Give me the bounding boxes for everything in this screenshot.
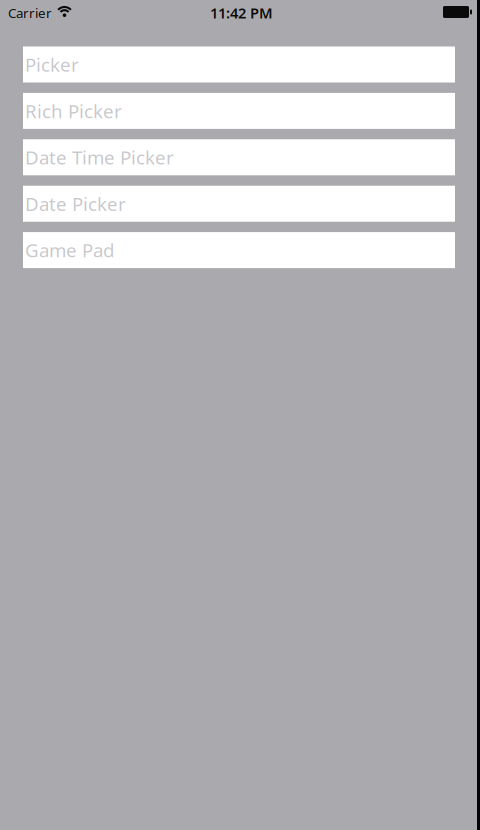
staticText: 11:42 PM [210, 3, 273, 22]
button[interactable]: Picker [23, 46, 455, 82]
button[interactable]: Game Pad [23, 232, 455, 268]
button[interactable]: Date Time Picker [23, 139, 455, 175]
button[interactable]: Date Picker [23, 186, 455, 222]
staticText: Game Pad [25, 238, 114, 262]
button[interactable]: Rich Picker [23, 93, 455, 129]
staticText: Picker [25, 52, 79, 77]
staticText: Date Picker [25, 191, 126, 216]
staticText: Date Time Picker [25, 145, 174, 170]
staticText: Rich Picker [25, 98, 122, 123]
staticText: Carrier [8, 4, 52, 22]
